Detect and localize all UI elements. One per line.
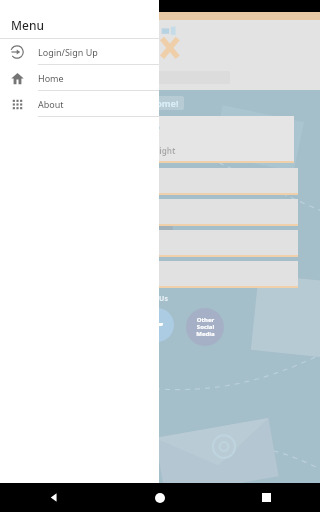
button[interactable]: Recent apps: [213, 483, 320, 512]
button[interactable]: Login/Sign Up: [0, 39, 159, 64]
staticText: Login/Sign Up: [38, 46, 98, 58]
staticText: About: [38, 98, 64, 110]
button[interactable]: Home: [0, 65, 159, 90]
button[interactable]: Home: [106, 483, 213, 512]
button[interactable]: About: [0, 91, 159, 116]
staticText: Other Social Media: [196, 316, 215, 338]
button[interactable]: Back: [0, 483, 106, 512]
staticText: Menu: [11, 17, 44, 33]
staticText: Welcome!: [135, 97, 179, 109]
staticText: Fight Blight: [129, 145, 176, 156]
staticText: Contact Us: [130, 294, 168, 304]
staticText: Home: [38, 72, 64, 84]
